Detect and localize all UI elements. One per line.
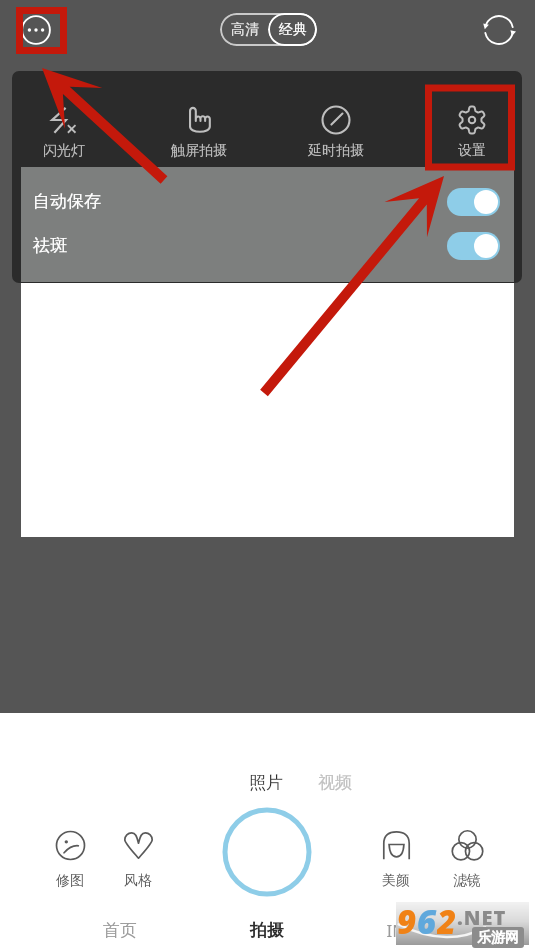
staticText: 自动保存	[33, 191, 101, 212]
button[interactable]: 滤镜	[437, 829, 497, 890]
staticText: 高清	[231, 21, 259, 39]
staticText: INSTAX	[386, 919, 444, 942]
staticText: 首页	[103, 920, 137, 941]
staticText: .NET	[457, 904, 507, 931]
staticText: 照片	[249, 772, 283, 793]
staticText: 6	[417, 899, 437, 942]
button[interactable]: 修图	[40, 829, 100, 890]
button[interactable]: 设置	[432, 87, 512, 162]
staticText: 触屏拍摄	[171, 142, 227, 160]
staticText: 视频	[318, 772, 352, 793]
staticText: 9	[397, 899, 417, 942]
staticText: 拍摄	[250, 920, 284, 941]
button[interactable]: 自动保存	[33, 179, 500, 224]
staticText: 风格	[124, 872, 152, 890]
button[interactable]: INSTAX	[365, 911, 465, 949]
button[interactable]: 美颜	[366, 829, 426, 890]
button[interactable]: More options	[15, 9, 56, 50]
staticText: 滤镜	[453, 872, 481, 890]
staticText: 修图	[56, 872, 84, 890]
button[interactable]: 风格	[108, 829, 168, 890]
button[interactable]: 延时拍摄	[296, 87, 376, 162]
button[interactable]: 拍摄	[217, 911, 317, 949]
button[interactable]: 照片	[240, 767, 292, 797]
button[interactable]: 首页	[70, 911, 170, 949]
staticText: 祛斑	[33, 235, 67, 256]
button[interactable]: 触屏拍摄	[159, 87, 239, 162]
staticText: 经典	[279, 21, 307, 39]
button[interactable]: Shutter	[222, 807, 312, 897]
staticText: 闪光灯	[43, 142, 85, 160]
button[interactable]: 高清	[220, 13, 270, 46]
button[interactable]: 闪光灯	[24, 87, 104, 162]
button[interactable]: 经典	[268, 13, 317, 46]
staticText: 2	[437, 899, 457, 942]
button[interactable]: Switch camera	[478, 9, 520, 51]
staticText: 乐游网	[477, 929, 519, 947]
staticText: 延时拍摄	[308, 142, 364, 160]
staticText: 美颜	[382, 872, 410, 890]
button[interactable]: 视频	[309, 767, 361, 797]
staticText: 设置	[458, 142, 486, 160]
button[interactable]: 祛斑	[33, 223, 500, 268]
